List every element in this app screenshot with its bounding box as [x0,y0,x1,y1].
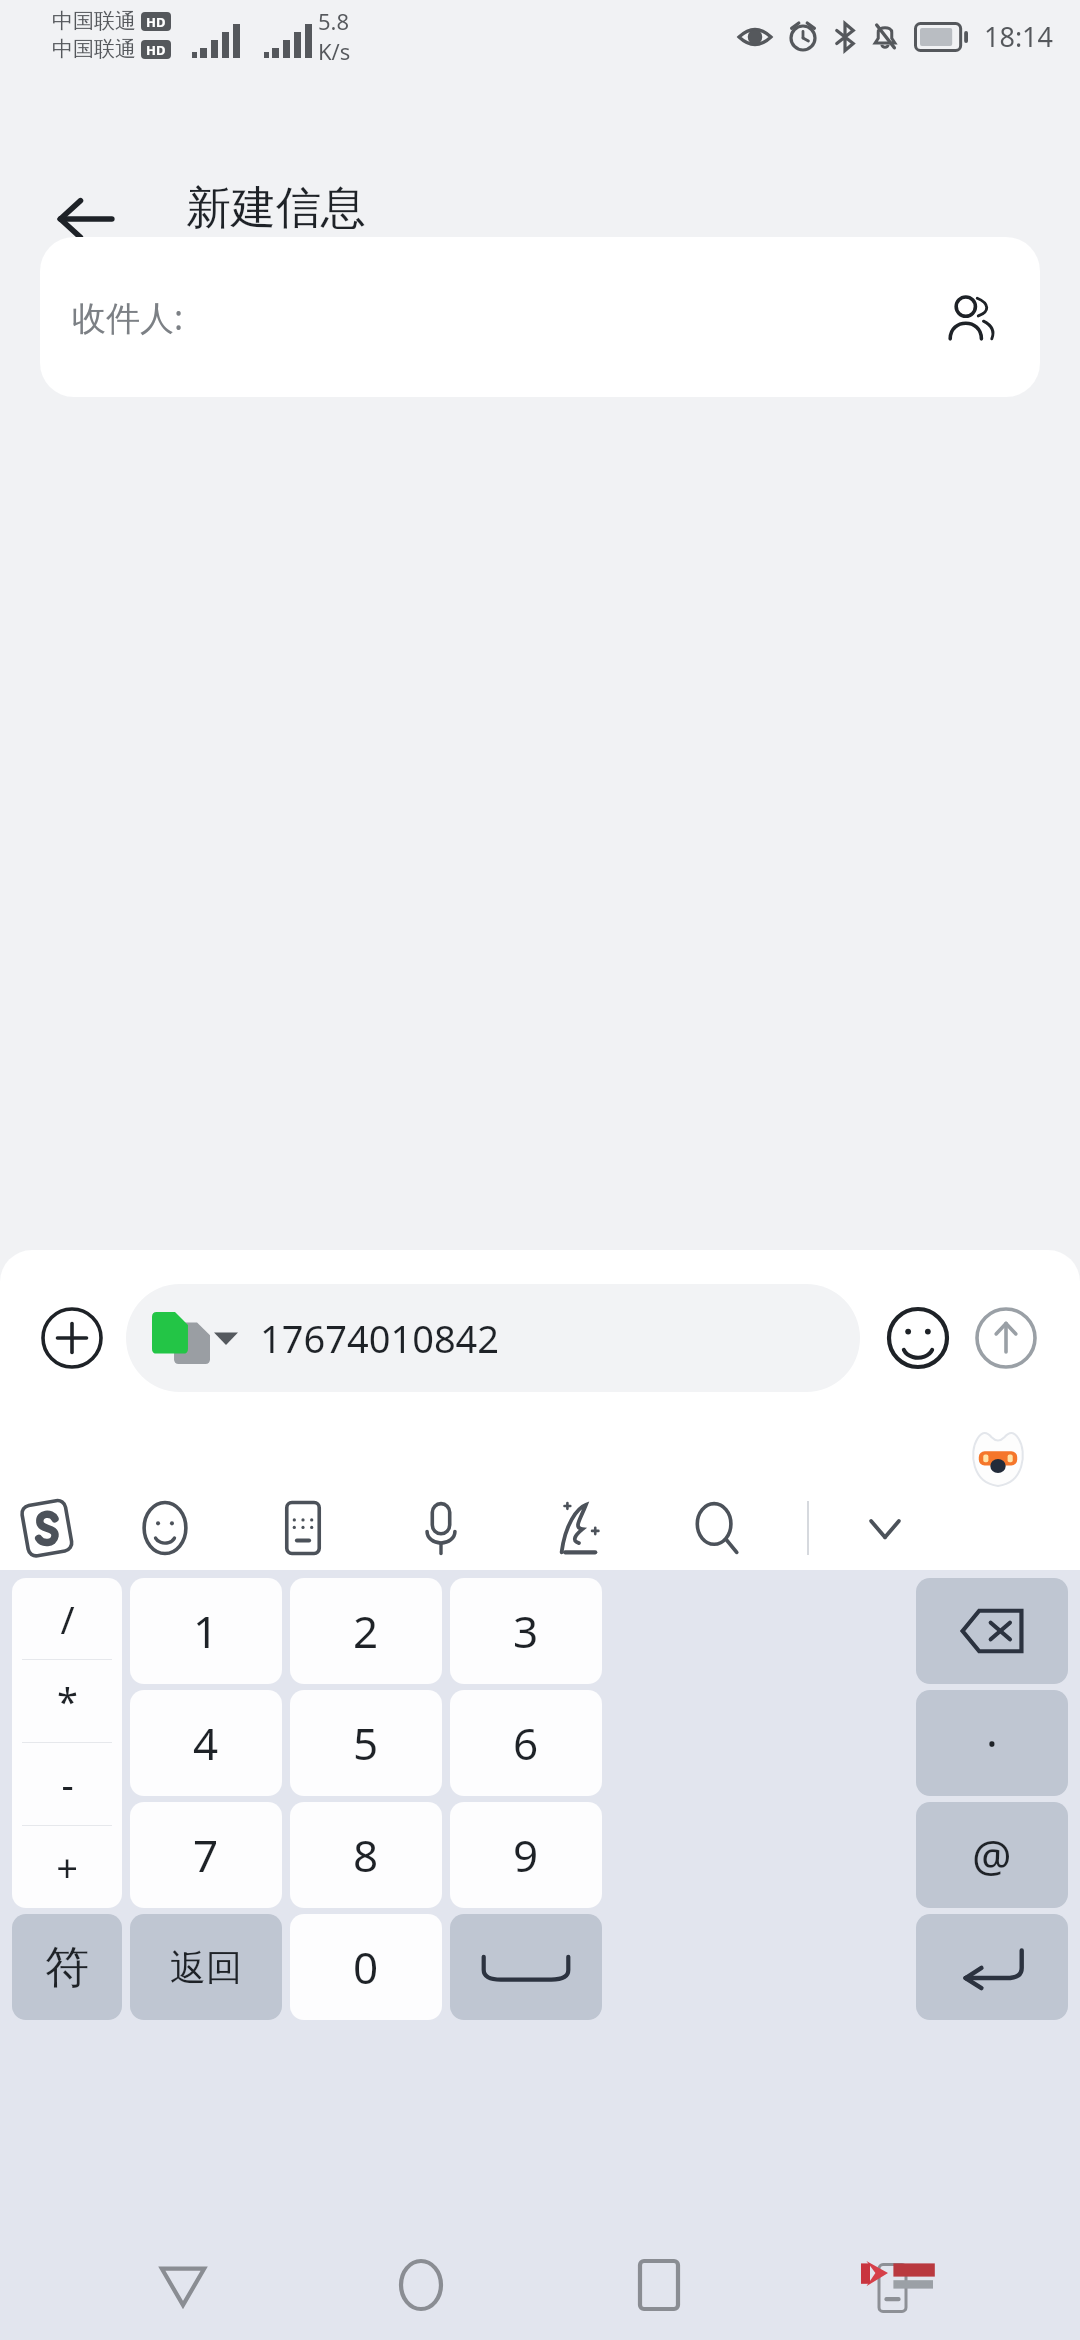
button[interactable]: 4 [130,1690,282,1796]
button[interactable]: Sogou input [0,1487,96,1569]
button[interactable]: Space [450,1914,602,2020]
staticText: K/s [318,36,351,66]
button[interactable]: 8 [290,1802,442,1908]
button[interactable]: 收件人: [40,237,1040,397]
staticText: 7 [193,1825,219,1885]
button[interactable]: Handwriting [510,1487,648,1569]
button[interactable]: Home [366,2230,476,2340]
button[interactable]: Search [648,1487,786,1569]
button[interactable]: Send [962,1294,1050,1382]
button[interactable]: @ [916,1802,1068,1908]
staticText: 8 [353,1825,379,1885]
button[interactable]: Back [128,2230,238,2340]
staticText: · [986,1713,998,1773]
staticText: 中国联通 [52,36,136,62]
button[interactable]: 17674010842 [126,1284,860,1392]
staticText: @ [972,1825,1012,1885]
staticText: 4 [193,1713,219,1773]
staticText: HD [146,41,166,59]
button[interactable]: Voice input [372,1487,510,1569]
button[interactable]: / [12,1578,122,1908]
staticText: + [56,1841,78,1893]
staticText: 收件人: [72,294,184,340]
button[interactable]: Back [50,184,120,254]
staticText: 5 [353,1713,379,1773]
staticText: 中国联通 [52,8,136,34]
button[interactable]: 5 [290,1690,442,1796]
staticText: 返回 [170,1945,242,1990]
staticText: 18:14 [984,18,1054,55]
button[interactable]: · [916,1690,1068,1796]
button[interactable]: Hide keyboard [830,1487,940,1569]
button[interactable]: 3 [450,1578,602,1684]
staticText: 2 [353,1601,379,1661]
button[interactable]: Recent apps [604,2230,714,2340]
button[interactable]: 9 [450,1802,602,1908]
button[interactable]: Emoticons [96,1487,234,1569]
button[interactable]: Pick contact [936,282,1006,352]
button[interactable]: Add attachment [30,1296,114,1380]
staticText: * [57,1675,78,1727]
staticText: 1 [193,1601,219,1661]
button[interactable]: Keyboard layout [234,1487,372,1569]
button[interactable]: 返回 [130,1914,282,2020]
button[interactable]: Enter [916,1914,1068,2020]
button[interactable]: Backspace [916,1578,1068,1684]
staticText: 17674010842 [260,1312,500,1364]
staticText: 6 [513,1713,539,1773]
staticText: 0 [353,1937,379,1997]
staticText: 5.8 [318,6,350,36]
staticText: 9 [513,1825,539,1885]
button[interactable]: 1 [130,1578,282,1684]
button[interactable]: 2 [290,1578,442,1684]
button[interactable]: Emoji [874,1294,962,1382]
button[interactable]: 符 [12,1914,122,2020]
staticText: 新建信息 [186,180,366,237]
staticText: 符 [45,1940,89,1995]
staticText: 3 [513,1601,539,1661]
button[interactable]: 0 [290,1914,442,2020]
staticText: - [61,1758,74,1810]
button[interactable]: 7 [130,1802,282,1908]
staticText: / [60,1593,75,1645]
staticText: HD [146,13,166,31]
button[interactable]: Assistant [966,1427,1030,1491]
button[interactable]: 6 [450,1690,602,1796]
